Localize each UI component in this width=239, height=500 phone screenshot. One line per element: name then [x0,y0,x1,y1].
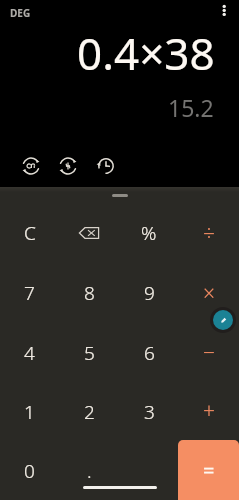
staticText: 3 [144,399,155,425]
button[interactable]: Currency converter [56,154,80,178]
button[interactable]: Backspace [59,203,119,263]
staticText: . [87,458,92,484]
staticText: 9 [144,280,155,306]
staticText: + [203,397,215,426]
button[interactable]: − [179,323,239,382]
staticText: 5 [84,340,95,366]
button[interactable]: 7 [0,263,59,323]
button[interactable]: 6 [119,323,179,382]
button[interactable]: Scientific keypad [213,310,233,330]
button[interactable]: + [179,382,239,441]
staticText: % [141,220,157,246]
button[interactable]: History [93,154,117,178]
button[interactable]: 1 [0,382,59,441]
other: Backspace [77,221,101,245]
button[interactable]: = [178,440,239,500]
button[interactable]: 4 [0,323,59,382]
staticText: 8 [84,280,95,306]
button[interactable]: C [0,203,59,263]
button[interactable]: 0 [0,441,59,500]
button[interactable]: ÷ [179,203,239,263]
staticText: × [203,279,215,308]
staticText: − [203,338,215,367]
staticText: 0 [24,458,35,484]
button[interactable]: 3 [119,382,179,441]
staticText: 4 [24,340,35,366]
button[interactable]: 8 [59,263,119,323]
button[interactable]: 9 [119,263,179,323]
staticText: 1 [24,399,35,425]
staticText: 0.4×38 [77,23,215,83]
staticText: 6 [144,340,155,366]
button[interactable]: × [179,263,239,323]
button[interactable]: 2 [59,382,119,441]
staticText: = [203,457,215,484]
staticText: 7 [24,280,35,306]
staticText: DEG [10,6,31,20]
button[interactable]: 5 [59,323,119,382]
button[interactable] [119,441,179,500]
staticText: C [24,220,36,246]
button[interactable]: More options [211,0,237,26]
button[interactable] [179,441,239,500]
button[interactable]: % [119,203,179,263]
staticText: 2 [84,399,95,425]
staticText: 15.2 [168,92,214,123]
button[interactable]: . [59,441,119,500]
button[interactable]: Unit converter [19,154,43,178]
staticText: ÷ [203,219,215,248]
